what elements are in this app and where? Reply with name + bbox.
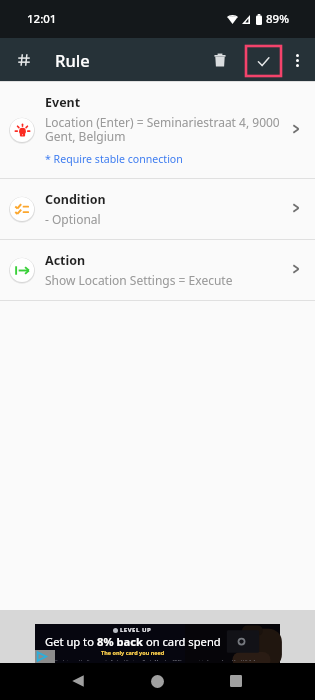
- button[interactable]: Rule type: [11, 47, 37, 73]
- staticText: on card spend: [143, 634, 221, 649]
- button[interactable]: Event: [0, 82, 315, 178]
- button[interactable]: Action: [0, 240, 315, 300]
- button[interactable]: Back: [63, 666, 93, 696]
- staticText: - Optional: [45, 211, 101, 227]
- button[interactable]: LEVEL UP: [35, 624, 280, 663]
- staticText: Get up to: [45, 634, 97, 649]
- staticText: LEVEL UP: [120, 626, 152, 634]
- staticText: Cards issued by Community Federal Saving…: [55, 659, 261, 661]
- staticText: Action: [45, 252, 86, 269]
- button[interactable]: Condition: [0, 179, 315, 239]
- staticText: 89%: [266, 11, 289, 27]
- button[interactable]: More options: [284, 47, 310, 73]
- staticText: 12:01: [27, 11, 57, 27]
- button[interactable]: Save: [246, 46, 281, 76]
- staticText: Rule: [55, 49, 90, 71]
- staticText: Event: [45, 94, 81, 111]
- staticText: Show Location Settings = Execute: [45, 272, 233, 288]
- staticText: Location (Enter) = Seminariestraat 4, 90…: [45, 114, 287, 144]
- staticText: The only card you need: [101, 649, 165, 656]
- staticText: * Require stable connection: [45, 152, 183, 166]
- button[interactable]: Home: [142, 666, 172, 696]
- staticText: Condition: [45, 191, 106, 208]
- button[interactable]: Delete: [206, 46, 234, 74]
- button[interactable]: Recent apps: [221, 666, 251, 696]
- staticText: 8% back: [97, 634, 143, 649]
